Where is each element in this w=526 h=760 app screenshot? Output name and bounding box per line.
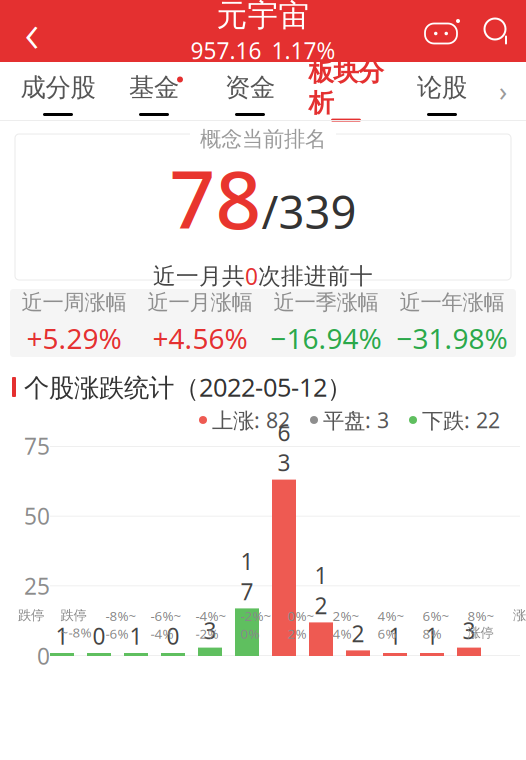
staticText: 资金: [225, 72, 275, 103]
staticText: 957.16: [190, 35, 261, 65]
staticText: 板块分析: [308, 56, 383, 119]
staticText: 50: [24, 501, 50, 531]
staticText: 近一年涨幅: [399, 289, 504, 315]
staticText: 3: [462, 615, 475, 646]
staticText: 0: [37, 641, 50, 671]
staticText: 次排进前十: [258, 262, 373, 290]
staticText: 0: [245, 261, 258, 291]
button[interactable]: Search: [468, 0, 526, 62]
staticText: 0%~2%: [287, 607, 314, 642]
staticText: /339: [261, 181, 356, 241]
button[interactable]: 论股: [394, 62, 490, 120]
staticText: ‹: [24, 0, 39, 68]
staticText: +4.56%: [152, 319, 247, 357]
staticText: 1: [388, 621, 401, 651]
staticText: -6%~-4%: [150, 607, 181, 642]
staticText: 17: [240, 546, 253, 606]
staticText: 78: [169, 145, 261, 251]
staticText: 近一月涨幅: [147, 289, 252, 315]
staticText: 1: [129, 621, 142, 651]
staticText: -2%~0%: [240, 607, 271, 642]
staticText: 上涨: 82: [212, 406, 290, 434]
staticText: 近一周涨幅: [21, 289, 126, 315]
staticText: 2%~4%: [332, 607, 359, 642]
staticText: 63: [277, 417, 290, 478]
staticText: ›: [499, 73, 507, 109]
staticText: 近一月共: [153, 262, 245, 290]
staticText: −16.94%: [270, 319, 381, 357]
staticText: 跌停: [18, 607, 44, 623]
staticText: 元宇宙: [216, 0, 309, 34]
button[interactable]: 基金: [106, 62, 202, 120]
staticText: 成分股: [20, 72, 95, 103]
staticText: 0: [166, 621, 179, 651]
button[interactable]: Back: [0, 0, 64, 62]
staticText: 1: [55, 621, 68, 651]
staticText: 0: [92, 621, 105, 651]
staticText: 12: [314, 560, 327, 620]
button[interactable]: 板块分析: [298, 62, 394, 120]
staticText: 平盘: 3: [323, 406, 389, 434]
staticText: 2: [351, 618, 364, 648]
staticText: 8%~涨停: [467, 607, 494, 641]
staticText: -8%~-6%: [105, 607, 136, 642]
button[interactable]: More tabs: [490, 62, 516, 120]
staticText: 涨停: [513, 607, 526, 623]
staticText: 论股: [417, 72, 467, 103]
staticText: 近一季涨幅: [273, 289, 378, 315]
button[interactable]: 资金: [202, 62, 298, 120]
staticText: 基金: [129, 72, 179, 103]
staticText: -4%~-2%: [195, 607, 226, 642]
button[interactable]: Assistant: [414, 0, 468, 62]
staticText: 1: [425, 621, 438, 651]
staticText: 3: [203, 615, 216, 646]
staticText: 概念当前排名: [200, 126, 326, 152]
staticText: 4%~6%: [377, 607, 404, 642]
staticText: 25: [24, 571, 50, 601]
staticText: 75: [24, 431, 50, 461]
staticText: 下跌: 22: [422, 406, 500, 434]
staticText: −31.98%: [396, 319, 507, 357]
staticText: 1.17%: [271, 35, 335, 65]
staticText: 6%~8%: [422, 607, 449, 642]
staticText: 跌停~-8%: [60, 607, 91, 641]
staticText: 个股涨跌统计（2022-05-12）: [24, 370, 352, 404]
staticText: +5.29%: [26, 319, 121, 357]
button[interactable]: 成分股: [10, 62, 106, 120]
